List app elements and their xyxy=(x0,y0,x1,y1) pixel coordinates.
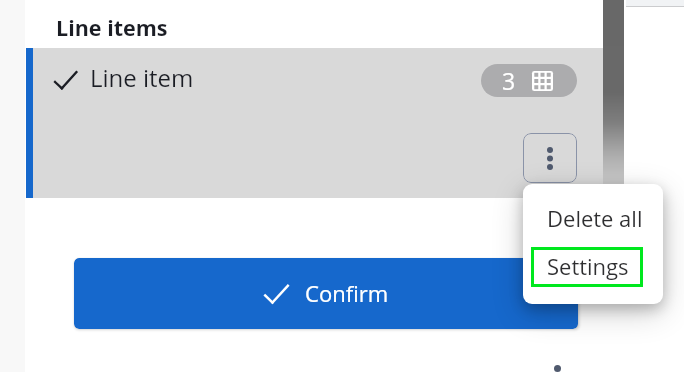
staticText: Confirm xyxy=(305,278,389,308)
staticText: Delete all xyxy=(547,203,643,233)
staticText: 3 xyxy=(502,65,516,96)
staticText: Line item xyxy=(90,61,194,94)
button[interactable]: Confirm xyxy=(74,258,578,329)
button[interactable]: Settings xyxy=(531,247,643,287)
button[interactable]: More options xyxy=(523,133,577,183)
staticText: Settings xyxy=(547,251,629,281)
staticText: Line items xyxy=(56,13,168,42)
button[interactable]: 3 items grid xyxy=(481,64,577,97)
